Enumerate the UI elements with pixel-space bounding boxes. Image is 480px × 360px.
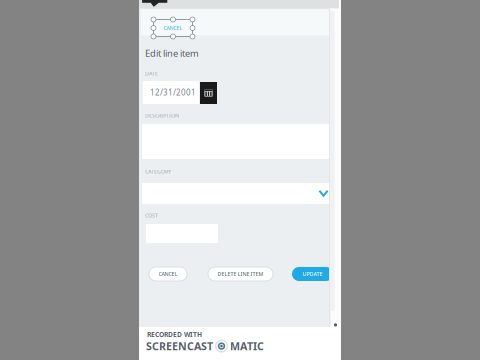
staticText: DATE: [145, 70, 158, 77]
staticText: RECORDED WITH: [147, 330, 202, 339]
button[interactable]: Choose date: [200, 82, 217, 104]
staticText: MATIC: [230, 339, 264, 353]
staticText: SCREENCAST: [146, 339, 213, 353]
button[interactable]: CANCEL: [148, 15, 198, 41]
staticText: CANCEL: [163, 24, 182, 32]
staticText: CANCEL: [158, 270, 177, 278]
button[interactable]: CANCEL: [149, 267, 187, 281]
staticText: UPDATE: [302, 270, 322, 278]
staticText: CATEGORY: [145, 168, 171, 175]
staticText: COST: [145, 212, 158, 219]
button[interactable]: DELETE LINE ITEM: [208, 267, 273, 281]
staticText: 12/31/2001: [150, 87, 196, 98]
staticText: DELETE LINE ITEM: [217, 270, 263, 278]
staticText: DESCRIPTION: [145, 112, 179, 119]
staticText: Edit line item: [145, 47, 199, 59]
button[interactable]: UPDATE: [292, 267, 333, 281]
